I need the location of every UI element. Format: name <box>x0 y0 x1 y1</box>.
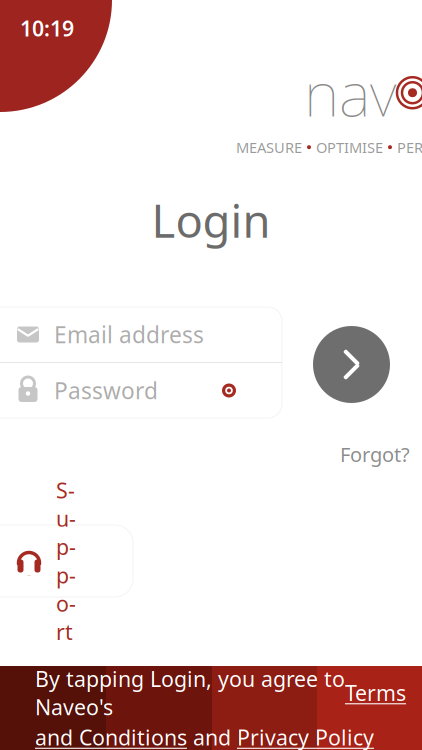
staticText: By tapping Login, you agree to Naveo's <box>35 664 345 721</box>
button[interactable]: Log in <box>313 326 390 403</box>
staticText: MEASURE <box>236 137 302 157</box>
staticText: Email address <box>54 319 204 349</box>
staticText: 10:19 <box>20 14 74 42</box>
button[interactable]: Email address <box>0 307 282 362</box>
button[interactable]: and Conditions <box>35 723 187 750</box>
button[interactable]: Support <box>0 525 133 597</box>
staticText: PERFORM <box>397 137 422 157</box>
staticText: OPTIMISE <box>316 137 383 157</box>
button[interactable]: Terms <box>345 679 406 707</box>
button[interactable]: Forgot? <box>334 437 416 472</box>
staticText: Support <box>56 476 76 646</box>
staticText: Terms <box>345 679 406 707</box>
staticText: Forgot? <box>340 441 410 468</box>
button[interactable]: Show password <box>212 373 246 407</box>
staticText: Login <box>151 190 270 250</box>
staticText: and <box>187 723 237 750</box>
button[interactable]: Privacy Policy <box>237 723 374 750</box>
staticText: nav <box>304 52 396 133</box>
staticText: Privacy Policy <box>237 723 374 750</box>
staticText: Password <box>54 375 158 405</box>
staticText: and Conditions <box>35 723 187 750</box>
